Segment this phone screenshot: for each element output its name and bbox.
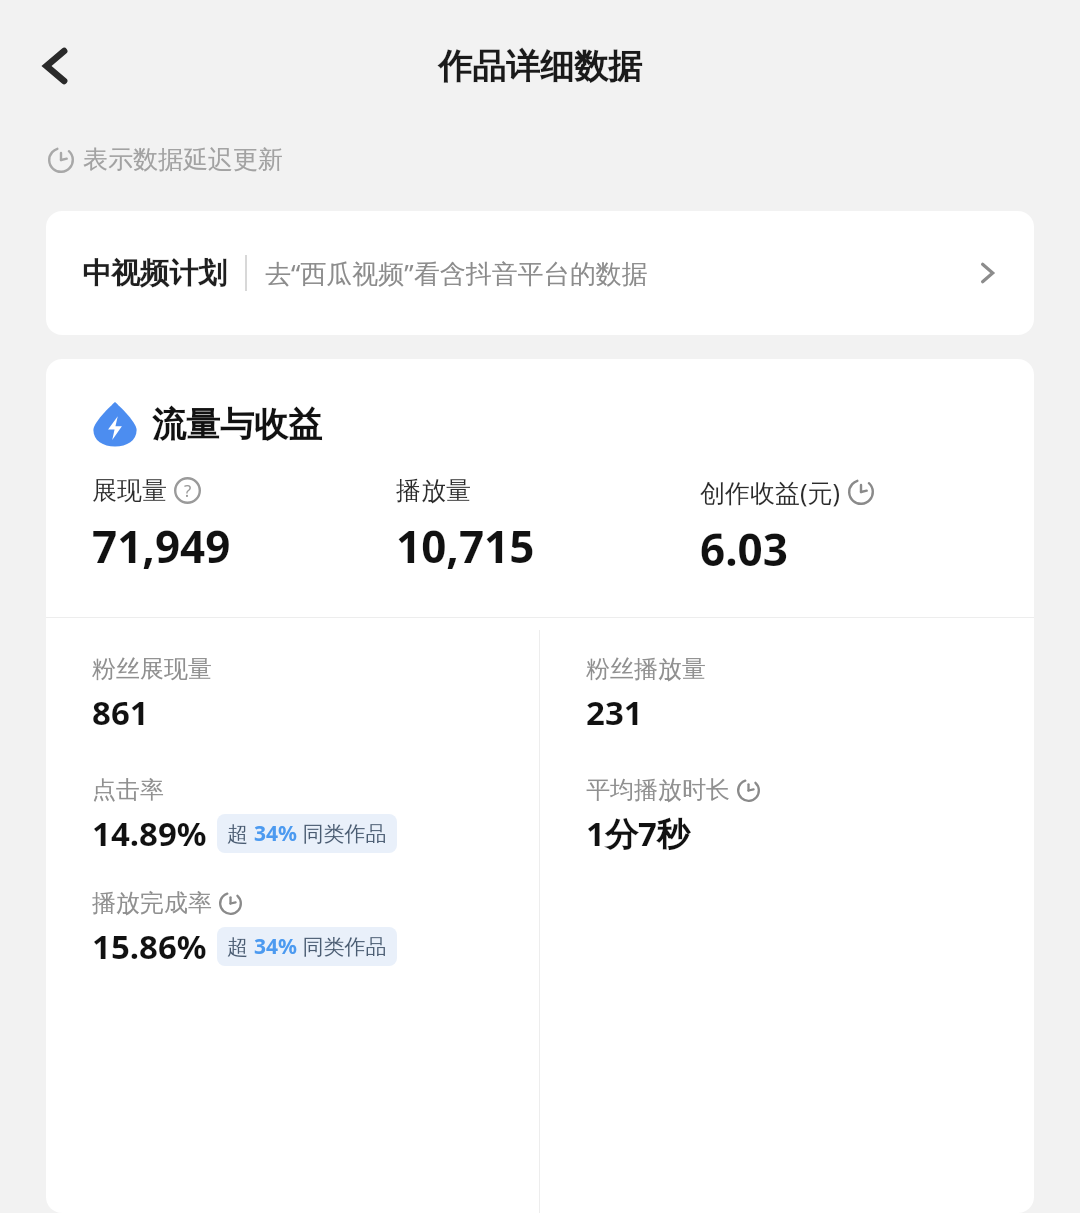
staticText: 34% bbox=[254, 932, 297, 961]
staticText: 平均播放时长 bbox=[586, 775, 730, 805]
staticText: 点击率 bbox=[92, 775, 164, 805]
staticText: 同类作品 bbox=[297, 932, 387, 961]
staticText: ? bbox=[184, 479, 192, 502]
staticText: 超 bbox=[227, 932, 254, 961]
staticText: 创作收益(元) bbox=[700, 475, 841, 509]
staticText: 播放量 bbox=[396, 475, 471, 506]
staticText: 15.86% bbox=[92, 924, 207, 969]
staticText: 861 bbox=[92, 690, 149, 735]
button[interactable]: 超 bbox=[217, 927, 397, 966]
button[interactable]: Back bbox=[22, 32, 90, 100]
staticText: 231 bbox=[586, 690, 643, 735]
staticText: 展现量 bbox=[92, 475, 167, 506]
staticText: 10,715 bbox=[396, 516, 535, 576]
staticText: 超 bbox=[227, 819, 254, 848]
staticText: 表示数据延迟更新 bbox=[83, 144, 283, 175]
staticText: 1分7秒 bbox=[586, 811, 690, 856]
staticText: 6.03 bbox=[700, 519, 788, 579]
staticText: 粉丝展现量 bbox=[92, 654, 212, 684]
staticText: 14.89% bbox=[92, 811, 207, 856]
button[interactable]: 超 bbox=[217, 814, 397, 853]
staticText: 34% bbox=[254, 819, 297, 848]
staticText: 播放完成率 bbox=[92, 888, 212, 918]
staticText: 中视频计划 bbox=[82, 255, 227, 292]
staticText: 作品详细数据 bbox=[438, 45, 642, 88]
button[interactable]: 中视频计划 bbox=[46, 211, 1034, 335]
staticText: 71,949 bbox=[92, 516, 231, 576]
staticText: 去“西瓜视频”看含抖音平台的数据 bbox=[265, 255, 976, 291]
staticText: 流量与收益 bbox=[152, 403, 322, 446]
staticText: 同类作品 bbox=[297, 819, 387, 848]
staticText: 粉丝播放量 bbox=[586, 654, 706, 684]
